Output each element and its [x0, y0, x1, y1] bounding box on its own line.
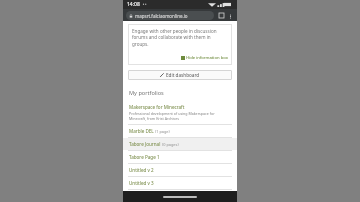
staticText: Makerspace for Minecraft	[129, 104, 185, 110]
staticText: (0 pages)	[162, 142, 179, 147]
staticText: Engage with other people in discussion f…	[132, 28, 228, 48]
button[interactable]: Edit dashboard	[128, 70, 232, 80]
button[interactable]: mapsrt.falciaomonline.io	[126, 11, 214, 20]
button[interactable]: Untitled v 2	[123, 164, 237, 176]
staticText: Untitled v 3	[129, 180, 154, 186]
staticText: Marble DEL	[129, 128, 154, 134]
staticText: (1 page)	[155, 129, 170, 134]
button[interactable]: Makerspace for Minecraft	[123, 101, 237, 124]
button[interactable]: Tabore Page 1	[123, 151, 237, 163]
button[interactable]: Hide information box	[181, 55, 228, 61]
button[interactable]: Tabs	[217, 11, 226, 20]
staticText: 14:08	[127, 1, 140, 8]
staticText: mapsrt.falciaomonline.io	[135, 13, 188, 19]
staticText: Hide information box	[186, 55, 228, 61]
staticText: Untitled v 2	[129, 167, 154, 173]
button[interactable]: Home gesture bar	[163, 196, 197, 198]
staticText: Professional development of using Makers…	[129, 111, 231, 121]
button[interactable]: More options	[226, 12, 234, 20]
button[interactable]: Untitled v 3	[123, 177, 237, 189]
staticText: My portfolios	[129, 89, 164, 97]
button[interactable]: Marble DEL	[123, 125, 237, 137]
button[interactable]: Tabore Journal	[123, 138, 237, 150]
staticText: Tabore Page 1	[129, 154, 160, 160]
staticText: Edit dashboard	[166, 72, 200, 78]
staticText: Tabore Journal	[129, 141, 161, 147]
